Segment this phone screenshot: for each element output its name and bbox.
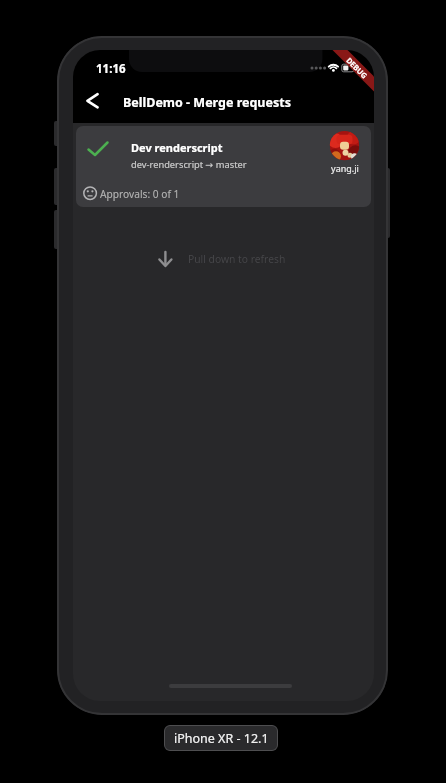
- button[interactable]: Pull down to refresh: [188, 252, 286, 266]
- staticText: BellDemo - Merge requests: [123, 94, 291, 111]
- button[interactable]: BellDemo - Merge requests: [123, 94, 291, 111]
- staticText: Pull down to refresh: [188, 252, 286, 266]
- staticText: Dev renderscript: [131, 140, 223, 155]
- staticText: Approvals: 0 of 1: [100, 187, 180, 201]
- staticText: yang.ji: [331, 162, 359, 174]
- staticText: iPhone XR - 12.1: [174, 730, 269, 747]
- staticText: dev-renderscript → master: [131, 158, 247, 171]
- staticText: DEBUG: [344, 55, 370, 81]
- button[interactable]: iPhone XR - 12.1: [164, 725, 278, 751]
- staticText: 11:16: [96, 61, 126, 77]
- button[interactable]: Dev renderscript: [76, 126, 371, 207]
